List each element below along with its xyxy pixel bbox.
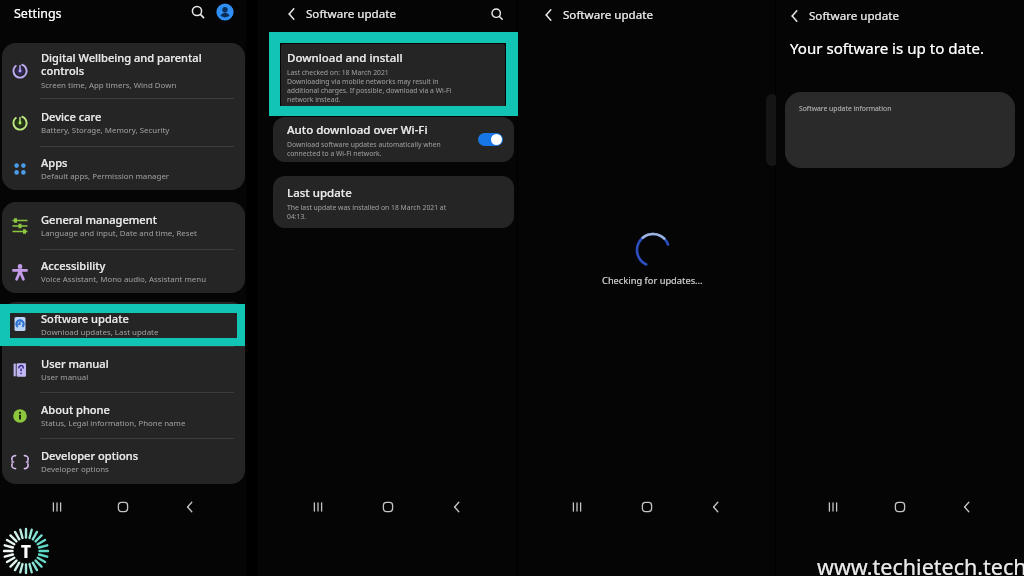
button[interactable]: Back (787, 8, 803, 24)
staticText: Software update (563, 7, 653, 23)
staticText: About phone (41, 402, 110, 417)
button[interactable]: Back (447, 497, 467, 517)
button[interactable]: Recents (567, 497, 587, 517)
button[interactable]: Last update (273, 176, 514, 228)
staticText: Language and input, Date and time, Reset (41, 228, 197, 239)
button[interactable]: Back (180, 497, 200, 517)
staticText: Status, Legal information, Phone name (41, 418, 186, 429)
staticText: The last update was installed on 18 Marc… (287, 203, 447, 221)
button[interactable]: Accessibility (2, 250, 245, 293)
button[interactable]: Home (378, 497, 398, 517)
button[interactable]: Software update information (785, 92, 1015, 168)
button[interactable]: Device care (2, 99, 245, 147)
staticText: Last update (287, 185, 352, 201)
staticText: Software update information (799, 104, 892, 113)
staticText: Downloading via mobile networks may resu… (287, 77, 452, 104)
staticText: Apps (41, 155, 68, 170)
staticText: T (21, 540, 31, 563)
button[interactable]: Back (284, 6, 300, 22)
button[interactable]: Software update (2, 302, 245, 347)
button[interactable]: Back (706, 497, 726, 517)
staticText: Default apps, Permission manager (41, 171, 170, 182)
staticText: Device care (41, 109, 102, 124)
staticText: Last checked on: 18 March 2021 (287, 68, 389, 77)
staticText: Download and install (287, 50, 403, 66)
staticText: Software update (41, 311, 129, 326)
staticText: General management (41, 212, 157, 227)
button[interactable]: Search (189, 3, 207, 21)
staticText: Settings (14, 5, 62, 22)
staticText: Auto download over Wi-Fi (287, 122, 428, 138)
button[interactable]: About phone (2, 393, 245, 439)
button[interactable]: Home (637, 497, 657, 517)
button[interactable]: Recents (823, 497, 843, 517)
button[interactable]: Back (541, 7, 557, 23)
button[interactable]: Home (113, 497, 133, 517)
staticText: Digital Wellbeing and parental controls (41, 50, 202, 79)
button[interactable]: Auto download toggle (478, 133, 503, 146)
button[interactable]: User manual (2, 347, 245, 393)
staticText: Accessibility (41, 258, 106, 273)
staticText: www.techietech.tech (817, 552, 1024, 576)
button[interactable]: Download and install (281, 44, 505, 107)
button[interactable]: Auto download over Wi-Fi (273, 117, 514, 162)
button[interactable]: Recents (47, 497, 67, 517)
button[interactable]: Search (488, 5, 506, 23)
staticText: Developer options (41, 448, 139, 463)
staticText: Software update (306, 6, 396, 22)
button[interactable]: General management (2, 202, 245, 250)
staticText: User manual (41, 372, 89, 383)
staticText: Download updates, Last update (41, 327, 159, 338)
button[interactable]: Account (216, 3, 234, 21)
staticText: Developer options (41, 464, 109, 475)
staticText: Your software is up to date. (790, 38, 984, 59)
staticText: Screen time, App timers, Wind Down (41, 80, 177, 91)
staticText: User manual (41, 356, 109, 371)
button[interactable]: Home (890, 497, 910, 517)
button[interactable]: Back (957, 497, 977, 517)
button[interactable]: Digital Wellbeing and parental controls (2, 43, 245, 99)
staticText: Battery, Storage, Memory, Security (41, 125, 170, 136)
staticText: Download software updates automatically … (287, 140, 441, 157)
button[interactable]: Recents (308, 497, 328, 517)
staticText: Checking for updates... (602, 274, 703, 287)
button[interactable]: Developer options (2, 439, 245, 484)
staticText: Voice Assistant, Mono audio, Assistant m… (41, 274, 207, 285)
staticText: Software update (809, 8, 899, 24)
button[interactable]: Apps (2, 147, 245, 190)
